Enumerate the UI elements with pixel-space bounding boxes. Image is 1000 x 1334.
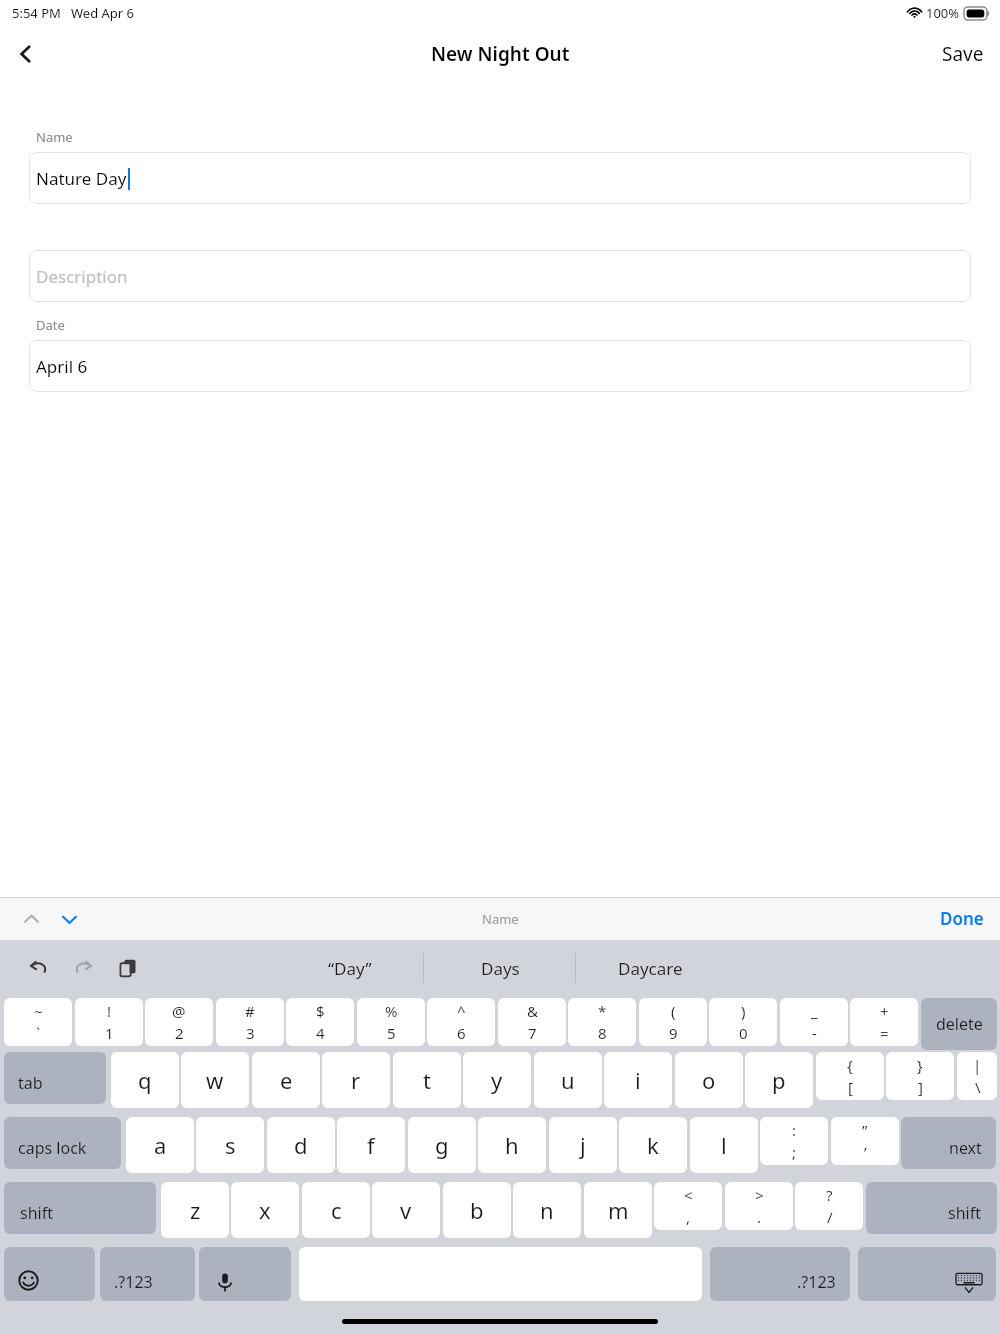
staticText: Save (942, 41, 984, 67)
button[interactable]: s (196, 1117, 264, 1173)
button[interactable]: Description (29, 250, 971, 302)
staticText: 6 (457, 1023, 466, 1043)
staticText: Days (481, 957, 520, 980)
button[interactable]: a (126, 1117, 194, 1173)
button[interactable]: b (443, 1182, 511, 1238)
button[interactable]: delete (921, 998, 997, 1050)
button[interactable]: h (478, 1117, 546, 1173)
staticText: ? (826, 1185, 833, 1205)
button[interactable]: < (654, 1182, 722, 1230)
staticText: shift (20, 1202, 53, 1224)
button[interactable]: n (513, 1182, 581, 1238)
button[interactable]: Done (924, 899, 1000, 938)
staticText: % (385, 1001, 398, 1021)
button[interactable]: Paste (108, 948, 148, 988)
button[interactable]: + (850, 998, 918, 1046)
staticText: / (827, 1207, 833, 1227)
staticText: o (702, 1065, 716, 1095)
staticText: ^ (457, 1001, 466, 1021)
button[interactable]: Save (926, 31, 1000, 77)
staticText: c (331, 1195, 342, 1225)
button[interactable]: % (357, 998, 425, 1046)
button[interactable]: ) (709, 998, 777, 1046)
staticText: \ (975, 1077, 981, 1097)
button[interactable]: k (619, 1117, 687, 1173)
button[interactable]: Days (430, 946, 570, 990)
staticText: “Day” (328, 957, 372, 980)
button[interactable]: f (337, 1117, 405, 1173)
staticText: n (540, 1195, 554, 1225)
button[interactable]: y (463, 1052, 531, 1108)
staticText: Date (36, 316, 65, 334)
button[interactable]: Back (4, 32, 48, 76)
staticText: Daycare (618, 957, 683, 980)
button[interactable]: : (760, 1117, 828, 1165)
button[interactable]: m (584, 1182, 652, 1238)
button[interactable]: | (957, 1052, 997, 1100)
button[interactable]: { (816, 1052, 884, 1100)
button[interactable]: r (322, 1052, 390, 1108)
button[interactable]: j (549, 1117, 617, 1173)
button[interactable]: Dictation (199, 1247, 291, 1301)
button[interactable]: $ (286, 998, 354, 1046)
staticText: next (949, 1137, 982, 1159)
button[interactable]: * (568, 998, 636, 1046)
button[interactable]: w (181, 1052, 249, 1108)
button[interactable]: ^ (427, 998, 495, 1046)
staticText: : (792, 1120, 797, 1140)
button[interactable]: ! (75, 998, 143, 1046)
button[interactable]: u (534, 1052, 602, 1108)
staticText: z (190, 1195, 201, 1225)
button[interactable]: Undo (18, 948, 58, 988)
button[interactable]: Daycare (580, 946, 720, 990)
button[interactable]: x (231, 1182, 299, 1238)
button[interactable]: Redo (64, 948, 104, 988)
button[interactable]: .?123 (100, 1247, 195, 1301)
button[interactable]: c (302, 1182, 370, 1238)
button[interactable]: tab (4, 1052, 106, 1104)
button[interactable]: > (725, 1182, 793, 1230)
staticText: * (598, 1001, 607, 1021)
button[interactable]: v (372, 1182, 440, 1238)
button[interactable]: z (161, 1182, 229, 1238)
staticText: April 6 (36, 355, 88, 378)
button[interactable]: .?123 (710, 1247, 850, 1301)
button[interactable]: # (216, 998, 284, 1046)
button[interactable]: shift (866, 1182, 997, 1234)
staticText: 4 (316, 1023, 325, 1043)
staticText: delete (936, 1013, 983, 1035)
button[interactable]: @ (145, 998, 213, 1046)
button[interactable]: April 6 (29, 340, 971, 392)
staticText: 5 (387, 1023, 396, 1043)
button[interactable]: ” (831, 1117, 899, 1165)
staticText: Name (36, 128, 73, 146)
button[interactable]: t (393, 1052, 461, 1108)
button[interactable]: Next field (52, 902, 86, 936)
button[interactable]: ( (639, 998, 707, 1046)
button[interactable]: g (408, 1117, 476, 1173)
staticText: Nature Day (36, 167, 127, 190)
button[interactable]: ? (795, 1182, 863, 1230)
button[interactable]: q (111, 1052, 179, 1108)
button[interactable]: _ (780, 998, 848, 1046)
button[interactable]: next (901, 1117, 996, 1169)
button[interactable]: } (886, 1052, 954, 1100)
button[interactable]: i (604, 1052, 672, 1108)
button[interactable]: Emoji (4, 1247, 95, 1301)
button[interactable]: shift (4, 1182, 156, 1234)
button[interactable]: o (675, 1052, 743, 1108)
staticText: f (367, 1130, 375, 1160)
button[interactable]: Nature Day (29, 152, 971, 204)
staticText: @ (172, 1001, 186, 1021)
button[interactable]: & (498, 998, 566, 1046)
button[interactable]: Hide keyboard (858, 1247, 996, 1301)
button[interactable]: “Day” (280, 946, 420, 990)
button[interactable]: p (745, 1052, 813, 1108)
button[interactable]: d (267, 1117, 335, 1173)
button[interactable]: Previous field (14, 902, 48, 936)
button[interactable]: caps lock (4, 1117, 121, 1169)
button[interactable]: l (690, 1117, 758, 1173)
button[interactable]: ~ (4, 998, 72, 1046)
button[interactable]: e (252, 1052, 320, 1108)
